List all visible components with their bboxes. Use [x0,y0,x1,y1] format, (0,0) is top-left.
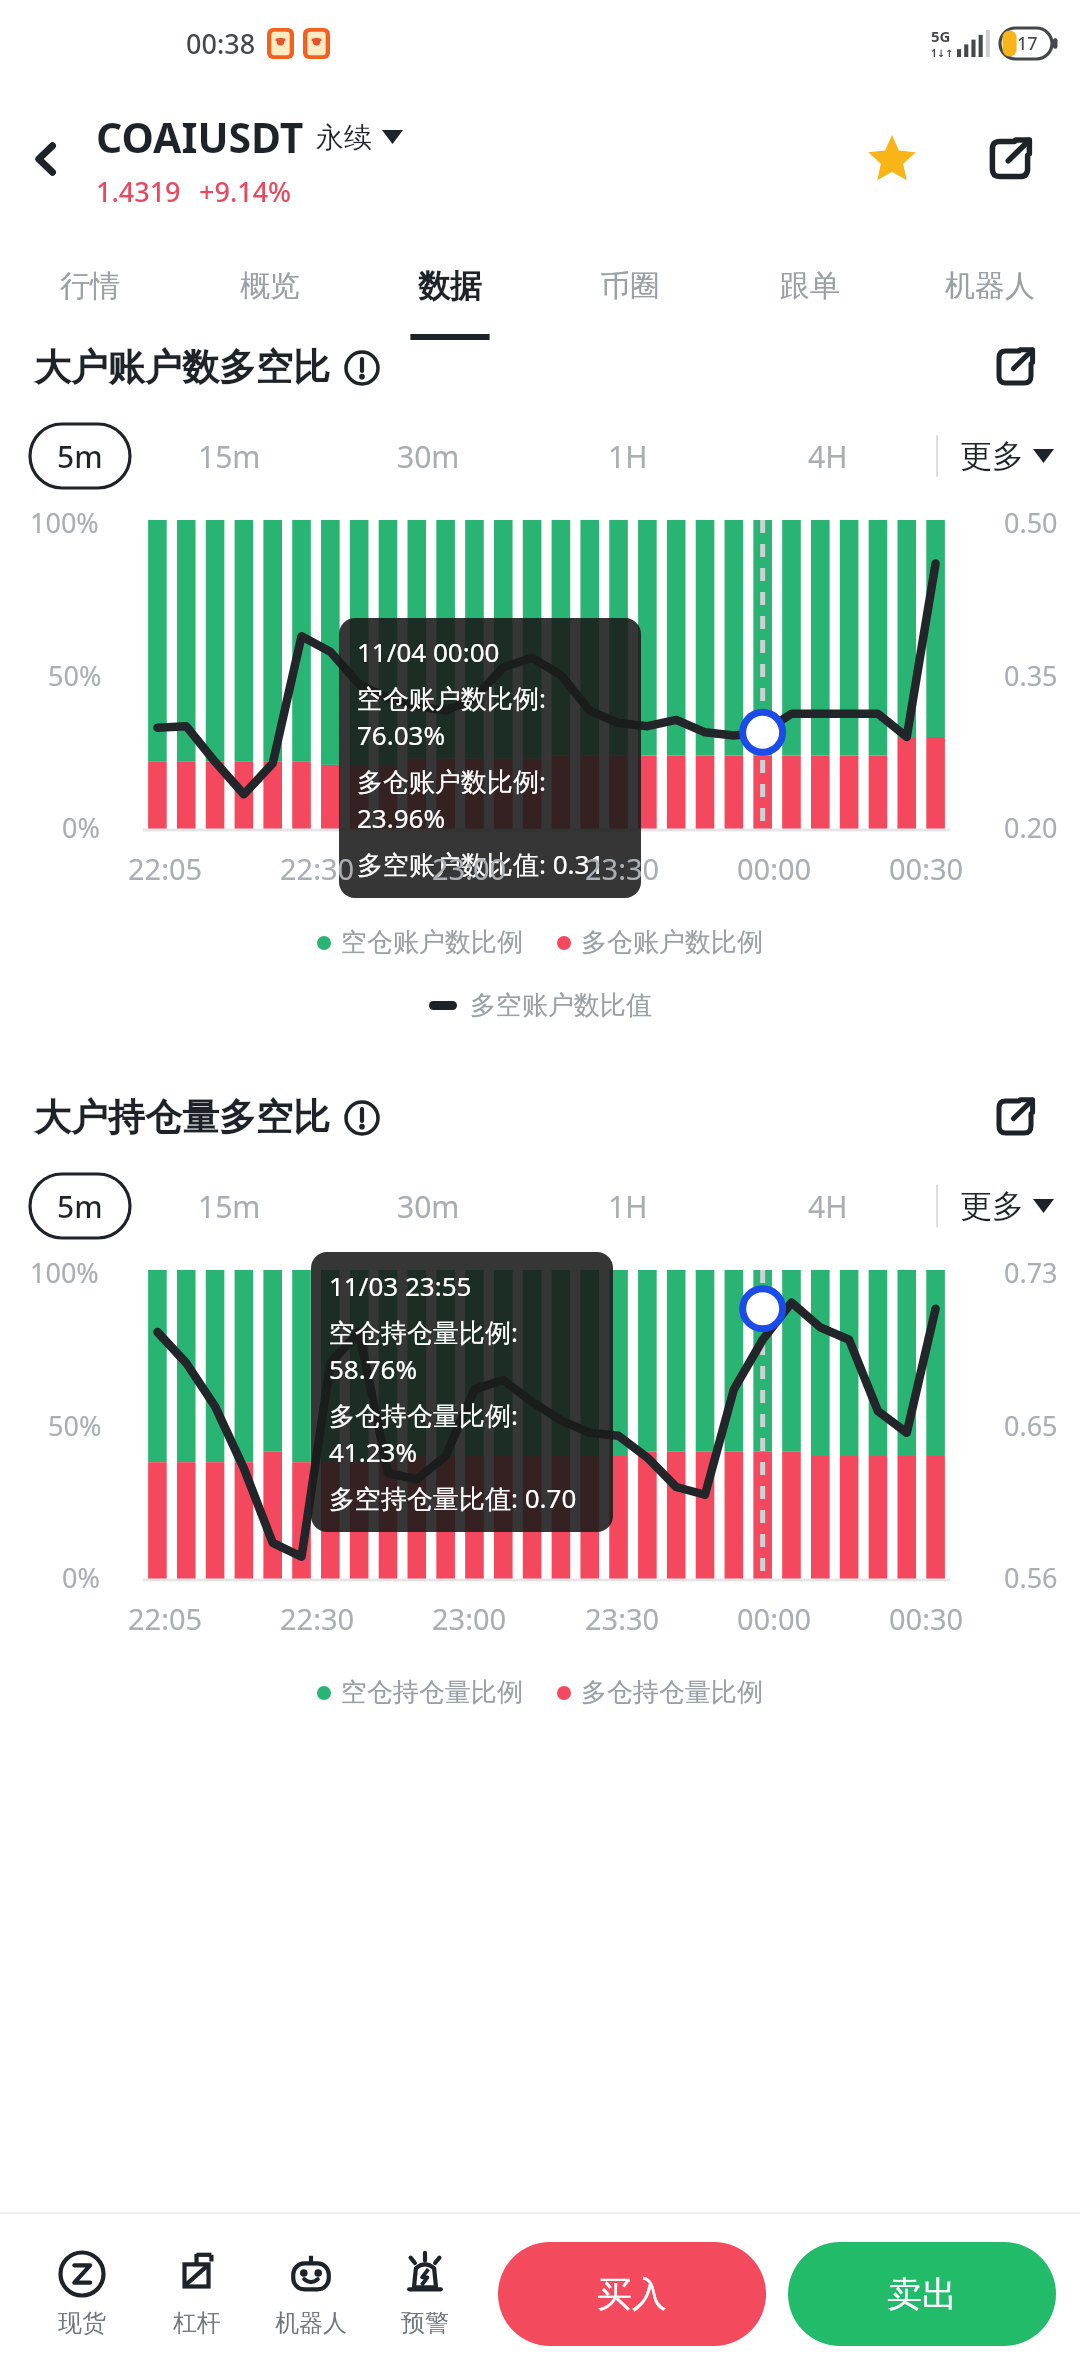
button[interactable]: 卖出 [788,2242,1056,2346]
staticText: 机器人 [275,2308,347,2338]
staticText: 5G [931,26,951,46]
staticText: 22:30 [280,1599,355,1638]
staticText: 大户账户数多空比 [34,344,330,391]
button[interactable]: 30m [329,410,528,502]
button[interactable]: 5m [30,1174,130,1238]
staticText: 0.50 [1004,504,1058,541]
staticText: 0.65 [1004,1407,1058,1444]
staticText: 00:30 [889,1599,964,1638]
staticText: 23:00 [432,1599,507,1638]
button[interactable]: Open chart detail [980,340,1050,402]
staticText: 5m [57,436,103,477]
button[interactable]: 更多 [960,1186,1054,1226]
staticText: 50% [48,1407,102,1444]
staticText: 15m [198,436,261,477]
staticText: 100% [30,1254,99,1291]
button[interactable]: 行情 [0,232,180,340]
staticText: 更多 [960,436,1024,476]
staticText: 多空持仓量比值: 0.70 [329,1480,577,1516]
button[interactable]: 机器人 [900,232,1080,340]
staticText: 行情 [60,267,120,305]
button[interactable]: 数据 [360,232,540,340]
button[interactable]: 大户持仓量多空比 [34,1094,380,1141]
staticText: 30m [397,436,460,477]
staticText: 多空账户数比值: 0.31 [357,846,605,882]
staticText: 22:30 [280,849,355,888]
staticText: 卖出 [887,2272,957,2316]
staticText: 大户持仓量多空比 [34,1094,330,1141]
staticText: 00:30 [889,849,964,888]
staticText: 15m [198,1186,261,1227]
staticText: 多仓持仓量比例 [581,1676,763,1709]
staticText: 多仓账户数比例 [581,926,763,959]
button[interactable]: 大户账户数多空比 [34,344,380,391]
staticText: 空仓账户数比例 [341,926,523,959]
button[interactable]: 1H [528,1160,728,1252]
staticText: 17 [1017,31,1038,56]
staticText: 23:30 [585,849,660,888]
staticText: 1H [608,436,648,477]
staticText: 0.20 [1004,809,1058,846]
staticText: COAIUSDT [96,109,304,165]
staticText: 11/03 23:55 [329,1268,472,1303]
staticText: 空仓持仓量比例 [341,1676,523,1709]
button[interactable]: 币圈 [540,232,720,340]
staticText: 更多 [960,1186,1024,1226]
button[interactable]: 概览 [180,232,360,340]
staticText: 1H [608,1186,648,1227]
staticText: 概览 [240,267,300,305]
button[interactable]: Back [14,127,78,191]
staticText: 币圈 [600,267,660,305]
staticText: 100% [30,504,99,541]
staticText: 4H [808,1186,848,1227]
staticText: 22:05 [128,1599,203,1638]
staticText: 0.56 [1004,1559,1058,1596]
button[interactable]: COAIUSDT [96,109,403,165]
staticText: 4H [808,436,848,477]
button[interactable]: Favorite [852,119,932,199]
button[interactable]: 更多 [960,436,1054,476]
staticText: 1.4319 [96,173,181,210]
staticText: 30m [397,1186,460,1227]
button[interactable]: 30m [329,1160,528,1252]
staticText: 00:38 [186,25,256,62]
staticText: 0.73 [1004,1254,1058,1291]
staticText: 22:05 [128,849,203,888]
staticText: 11/04 00:00 [357,634,500,669]
staticText: 5m [57,1186,103,1227]
button[interactable]: 跟单 [720,232,900,340]
staticText: 预警 [401,2308,449,2338]
staticText: 永续 [316,120,372,155]
button[interactable]: 5m [30,424,130,488]
staticText: 00:00 [737,849,812,888]
staticText: 数据 [418,266,482,306]
staticText: 50% [48,657,102,694]
staticText: 空仓账户数比例: 76.03% [357,680,623,752]
button[interactable]: 杠杆 [139,2212,254,2376]
button[interactable]: 15m [130,410,329,502]
staticText: 23:30 [585,1599,660,1638]
staticText: 多空账户数比值 [470,989,652,1022]
button[interactable]: 1H [528,410,728,502]
staticText: 1↓↑ [931,46,954,60]
button[interactable]: 4H [728,410,928,502]
button[interactable]: 15m [130,1160,329,1252]
staticText: 23:00 [432,849,507,888]
staticText: 0% [62,809,100,846]
staticText: 跟单 [780,267,840,305]
staticText: 机器人 [945,267,1035,305]
staticText: 多仓账户数比例: 23.96% [357,763,623,835]
staticText: 买入 [597,2272,667,2316]
staticText: +9.14% [199,173,292,210]
button[interactable]: Open chart detail [980,1082,1050,1152]
button[interactable]: 现货 [24,2212,139,2376]
button[interactable]: 预警 [368,2212,482,2376]
staticText: 0.35 [1004,657,1058,694]
staticText: 现货 [58,2308,106,2338]
staticText: 0% [62,1559,100,1596]
staticText: 00:00 [737,1599,812,1638]
button[interactable]: Share [970,119,1050,199]
button[interactable]: 买入 [498,2242,766,2346]
button[interactable]: 4H [728,1160,928,1252]
button[interactable]: 机器人 [254,2212,368,2376]
